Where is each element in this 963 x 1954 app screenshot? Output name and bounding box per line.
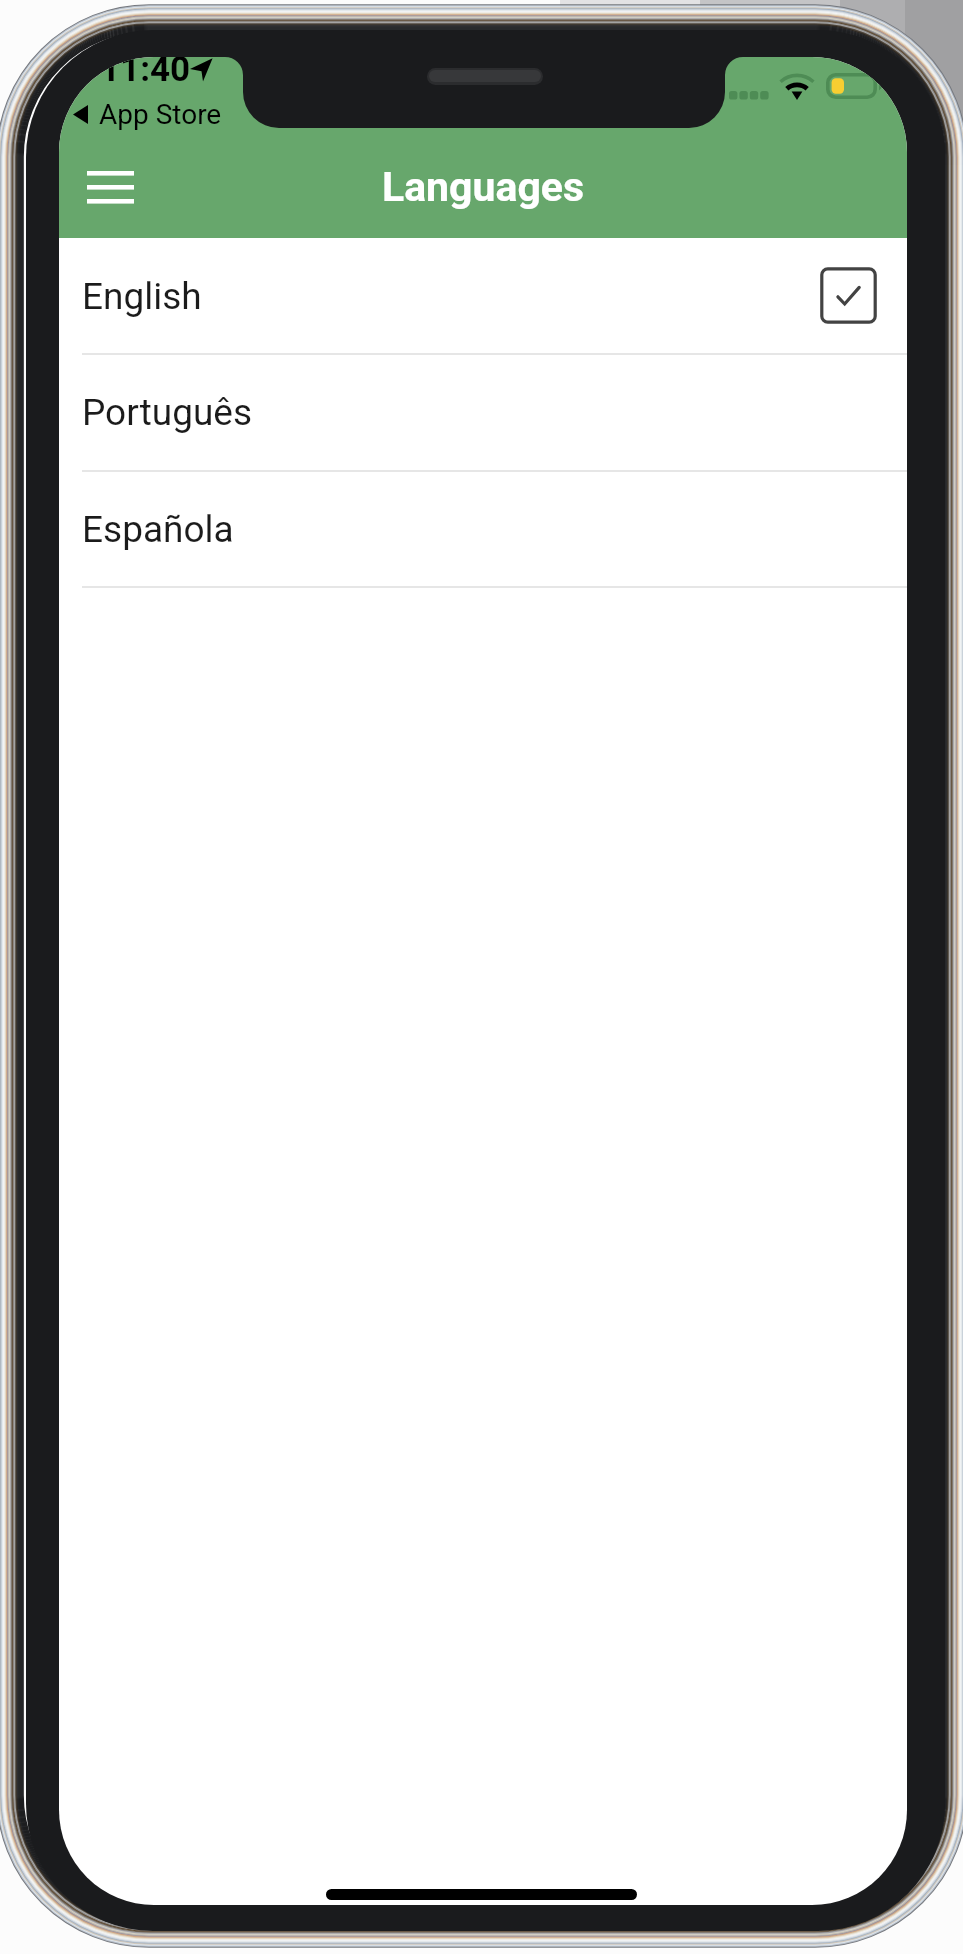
other: Location services active — [189, 57, 214, 83]
button[interactable]: Española — [59, 470, 907, 586]
button[interactable]: English — [59, 238, 907, 353]
staticText: Española — [82, 508, 234, 551]
staticText: Languages — [382, 163, 585, 211]
other: Wi-Fi — [778, 70, 818, 102]
staticText: 11:40 — [100, 57, 191, 90]
staticText: English — [82, 275, 202, 318]
other: Battery low — [826, 73, 884, 100]
staticText: Português — [82, 391, 253, 434]
staticText: App Store — [99, 98, 222, 131]
button[interactable]: Português — [59, 353, 907, 470]
button[interactable]: Open navigation menu — [70, 147, 150, 227]
